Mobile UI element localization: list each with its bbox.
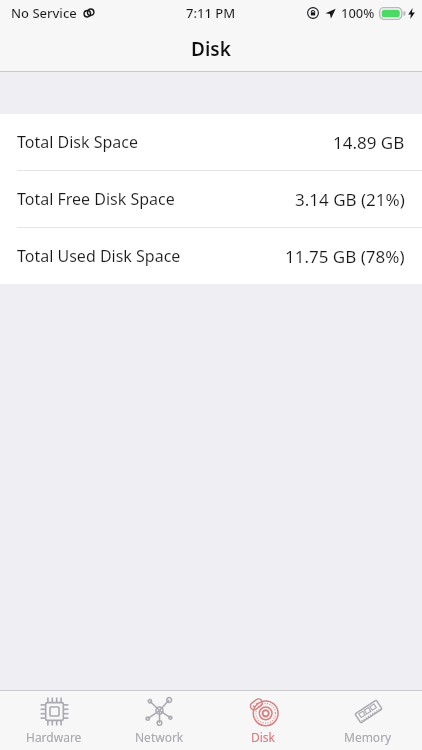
staticText: 11.75 GB (78%) [285,245,405,268]
staticText: 100% [341,4,375,22]
staticText: 7:11 PM [186,4,236,22]
staticText: Disk [191,36,231,62]
button[interactable]: Total Free Disk Space [0,171,422,227]
button[interactable]: Total Used Disk Space [0,228,422,284]
staticText: 14.89 GB [333,131,405,154]
button[interactable]: Network [109,691,209,750]
button[interactable]: Disk [213,691,313,750]
staticText: Memory [344,729,392,745]
staticText: No Service [11,4,77,22]
button[interactable]: Total Disk Space [0,114,422,170]
staticText: Total Disk Space [17,131,138,153]
staticText: Network [135,729,184,745]
staticText: Hardware [26,729,82,745]
button[interactable]: Memory [318,691,418,750]
staticText: Total Free Disk Space [17,188,175,210]
staticText: Total Used Disk Space [17,245,181,267]
staticText: 3.14 GB (21%) [295,188,405,211]
staticText: Disk [251,729,276,745]
button[interactable]: Hardware [4,691,104,750]
